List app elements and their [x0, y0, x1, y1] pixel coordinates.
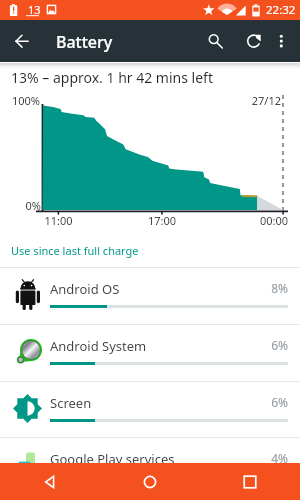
button[interactable]: Navigate up — [10, 29, 34, 53]
staticText: 8% — [240, 280, 288, 296]
button[interactable]: Google Play services — [0, 437, 300, 493]
button[interactable]: Android System — [0, 324, 300, 380]
staticText: 11:00 — [39, 213, 78, 228]
staticText: Use since last full charge — [11, 243, 139, 258]
button[interactable]: Recent apps — [200, 463, 300, 500]
staticText: Android System — [50, 337, 147, 355]
staticText: 100% — [0, 93, 40, 108]
staticText: 00:00 — [260, 213, 298, 228]
staticText: 4% — [240, 450, 288, 466]
staticText: 0% — [0, 198, 41, 213]
staticText: Screen — [50, 394, 92, 412]
staticText: Android OS — [50, 280, 120, 298]
button[interactable]: Refresh — [242, 28, 266, 52]
staticText: 22:32 — [266, 2, 296, 18]
staticText: 17:00 — [143, 213, 181, 228]
button[interactable]: Back — [0, 463, 100, 500]
staticText: Google Play services — [50, 450, 175, 468]
staticText: 27/12 — [220, 93, 281, 108]
staticText: Battery — [56, 31, 113, 53]
button[interactable]: Screen — [0, 381, 300, 437]
staticText: 6% — [240, 394, 288, 410]
button[interactable]: More options — [269, 28, 293, 52]
staticText: 13 — [28, 2, 41, 17]
button[interactable]: Use since last full charge — [0, 232, 300, 267]
button[interactable]: Android OS — [0, 267, 300, 323]
button[interactable]: Home — [100, 463, 200, 500]
staticText: 13% – approx. 1 hr 42 mins left — [11, 68, 213, 87]
button[interactable]: Search — [202, 28, 226, 52]
staticText: 6% — [240, 337, 288, 353]
